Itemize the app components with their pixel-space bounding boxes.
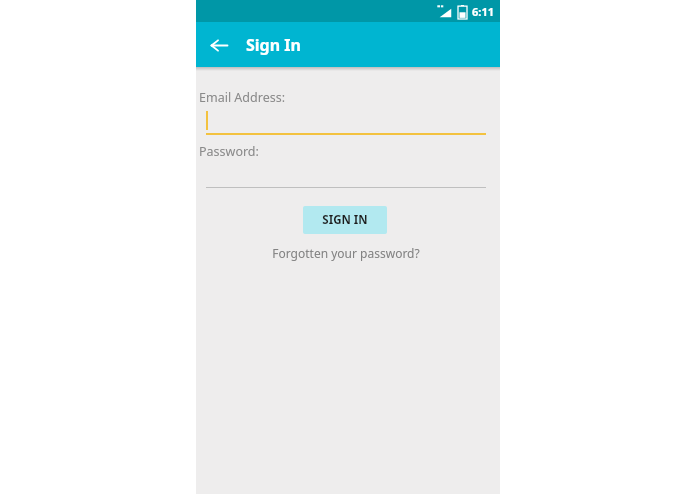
button[interactable]: Forgotten your password? [271,243,421,263]
button[interactable]: Back [203,29,235,61]
staticText: Forgotten your password? [272,245,420,261]
button[interactable] [206,109,486,135]
staticText: Email Address: [199,89,286,106]
staticText: Password: [199,143,259,160]
staticText: SIGN IN [322,212,368,228]
button[interactable]: SIGN IN [303,206,387,234]
staticText: Sign In [246,34,301,56]
staticText: 6:11 [472,4,494,19]
